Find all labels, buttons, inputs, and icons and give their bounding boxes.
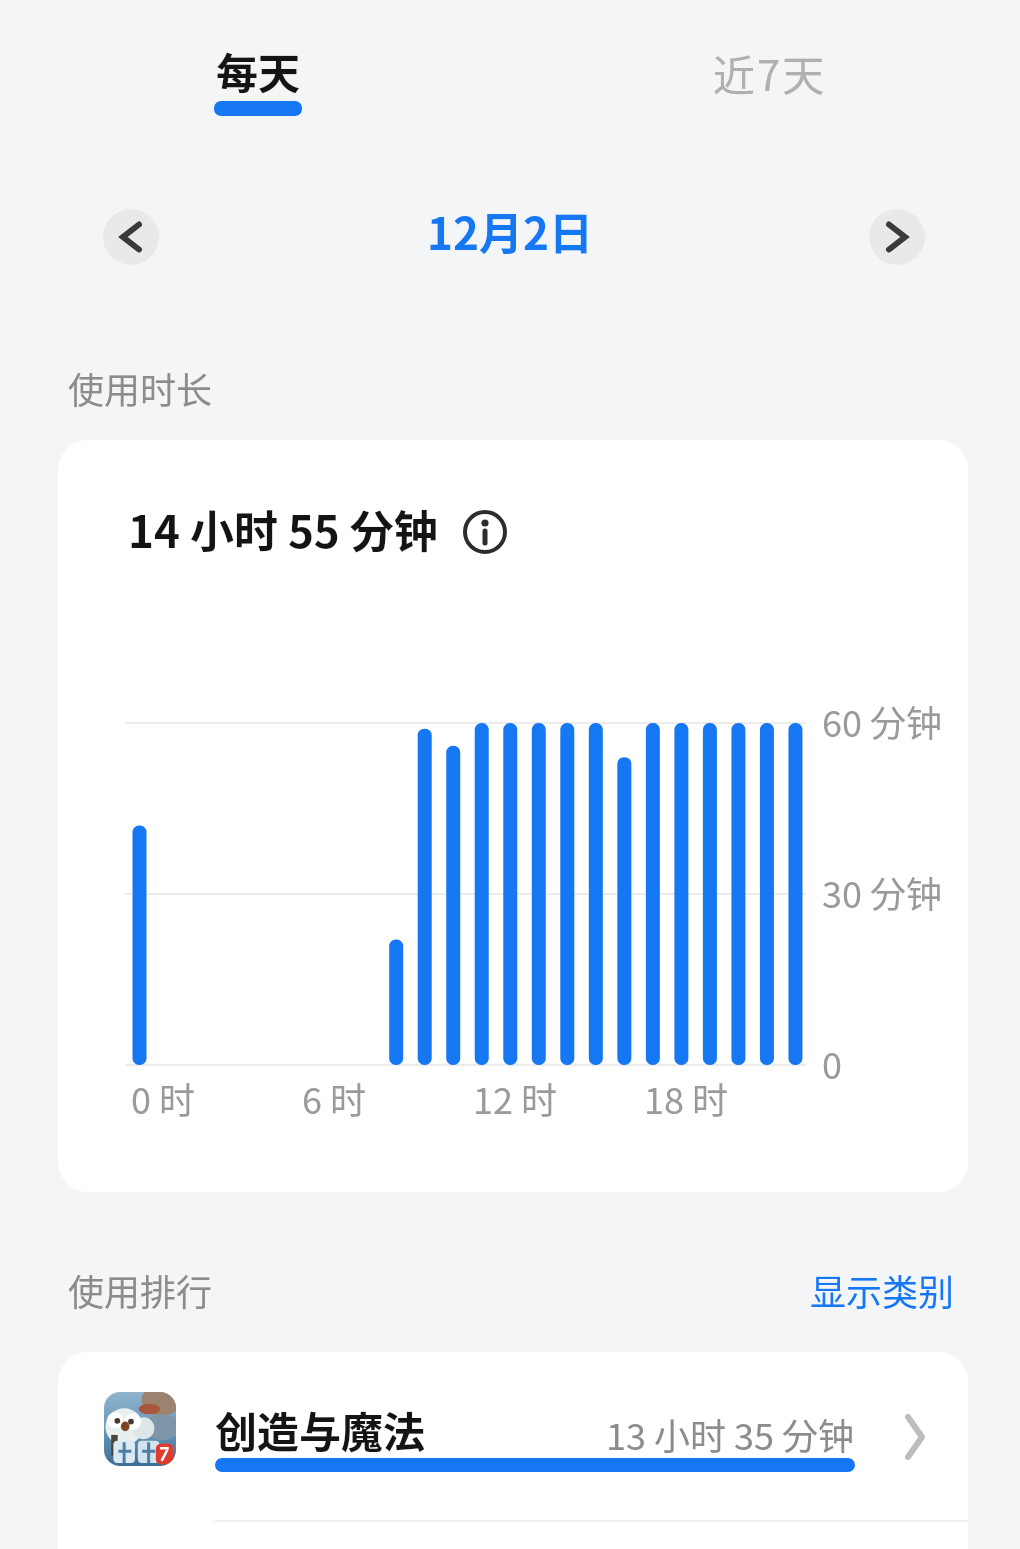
staticText: 6 时 <box>302 1072 367 1124</box>
staticText: 使用时长 <box>68 362 213 414</box>
staticText: 18 时 <box>644 1072 729 1124</box>
button[interactable]: 创造与魔法 <box>58 1352 968 1530</box>
staticText: 30 分钟 <box>822 866 943 918</box>
button[interactable] <box>464 511 506 553</box>
staticText: 0 时 <box>131 1072 196 1124</box>
staticText: 近7天 <box>713 42 827 103</box>
staticText: 12 时 <box>473 1072 558 1124</box>
staticText: 12月2日 <box>427 199 593 259</box>
staticText: 13 小时 35 分钟 <box>606 1408 855 1460</box>
staticText: 14 小时 55 分钟 <box>128 497 438 561</box>
button[interactable] <box>869 209 925 265</box>
button[interactable]: 每天 <box>183 30 333 116</box>
button[interactable]: 近7天 <box>695 30 845 116</box>
staticText: 创造与魔法 <box>215 1399 426 1460</box>
staticText: 0 <box>822 1037 842 1089</box>
button[interactable] <box>103 209 159 265</box>
staticText: 60 分钟 <box>822 695 943 747</box>
staticText: 使用排行 <box>68 1264 213 1316</box>
staticText: 每天 <box>216 40 301 101</box>
